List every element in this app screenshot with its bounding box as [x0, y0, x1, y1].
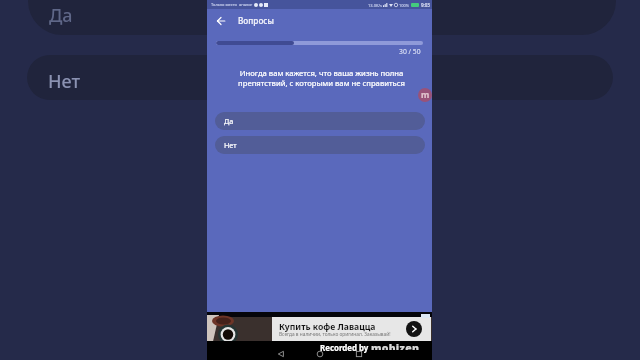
button[interactable]: Recent apps	[353, 348, 365, 360]
staticText: Да	[224, 116, 234, 126]
staticText: Купить кофе Лавацца	[279, 321, 376, 333]
button[interactable]: Нет	[215, 136, 425, 154]
button[interactable]: Back	[275, 348, 287, 360]
button[interactable]: Home	[314, 348, 326, 360]
staticText: Recorded by	[320, 343, 369, 354]
button[interactable]: Купить кофе Лавацца	[272, 317, 431, 341]
staticText: Всегда в наличии, только оригинал. Заказ…	[279, 331, 391, 338]
button[interactable]: Open advertisement	[406, 321, 422, 337]
staticText: 13.0K/s	[368, 3, 382, 8]
staticText: Только место аналог	[211, 2, 253, 7]
button[interactable]: Back	[213, 13, 228, 28]
staticText: Вопросы	[238, 15, 274, 26]
staticText: 9:03	[421, 2, 430, 8]
staticText: 100%	[399, 3, 410, 8]
staticText: mobizen	[371, 341, 420, 350]
staticText: Да	[49, 3, 73, 28]
button[interactable]: Да	[215, 112, 425, 130]
staticText: Иногда вам кажется, что ваша жизнь полна…	[219, 68, 424, 88]
staticText: Нет	[48, 69, 81, 94]
staticText: Нет	[224, 140, 237, 150]
staticText: 30 / 50	[399, 47, 421, 56]
staticText: m	[421, 89, 430, 101]
